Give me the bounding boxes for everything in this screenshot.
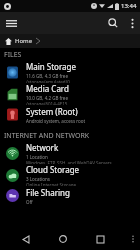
- staticText: Windows, FTP, SSH, and WebDAV Servers: [26, 160, 112, 164]
- staticText: 10.0 GB, 4.2 GB free: [26, 95, 68, 101]
- button[interactable]: Recent apps: [89, 228, 111, 250]
- button[interactable]: Network: [0, 142, 140, 164]
- button[interactable]: Media Card: [0, 83, 140, 105]
- button[interactable]: Cloud Storage: [0, 164, 140, 186]
- button[interactable]: Main Storage: [0, 61, 140, 83]
- button[interactable]: More options: [124, 12, 140, 34]
- staticText: Off: [26, 199, 33, 205]
- staticText: /storage/emulated/0: [26, 79, 70, 83]
- staticText: FILES: [4, 50, 22, 60]
- button[interactable]: More: [126, 228, 140, 250]
- staticText: INTERNET AND NETWORK: [4, 131, 90, 141]
- button[interactable]: Back: [15, 228, 37, 250]
- button[interactable]: Home: [52, 228, 74, 250]
- button[interactable]: System (Root): [0, 105, 140, 124]
- staticText: 11.6 GB, 4.3 GB free: [26, 73, 68, 79]
- staticText: Online Internet Storage: [26, 182, 76, 186]
- button[interactable]: File Sharing: [0, 186, 140, 205]
- staticText: /storage/6014-4E15: [26, 101, 68, 105]
- staticText: Home: [15, 37, 33, 45]
- staticText: File Sharing: [26, 187, 70, 198]
- staticText: 3 Locations: [26, 176, 50, 182]
- button[interactable]: Home: [0, 34, 140, 48]
- staticText: Main Storage: [26, 61, 77, 72]
- staticText: Cloud Storage: [26, 164, 80, 175]
- staticText: Android system, access root: [26, 118, 86, 124]
- button[interactable]: Open navigation drawer: [0, 12, 22, 34]
- staticText: 13:44: [121, 2, 137, 10]
- staticText: System (Root): [26, 106, 78, 117]
- staticText: Media Card: [26, 83, 69, 94]
- staticText: Network: [26, 142, 59, 153]
- staticText: 1 Location: [26, 154, 48, 160]
- button[interactable]: Search: [102, 12, 124, 34]
